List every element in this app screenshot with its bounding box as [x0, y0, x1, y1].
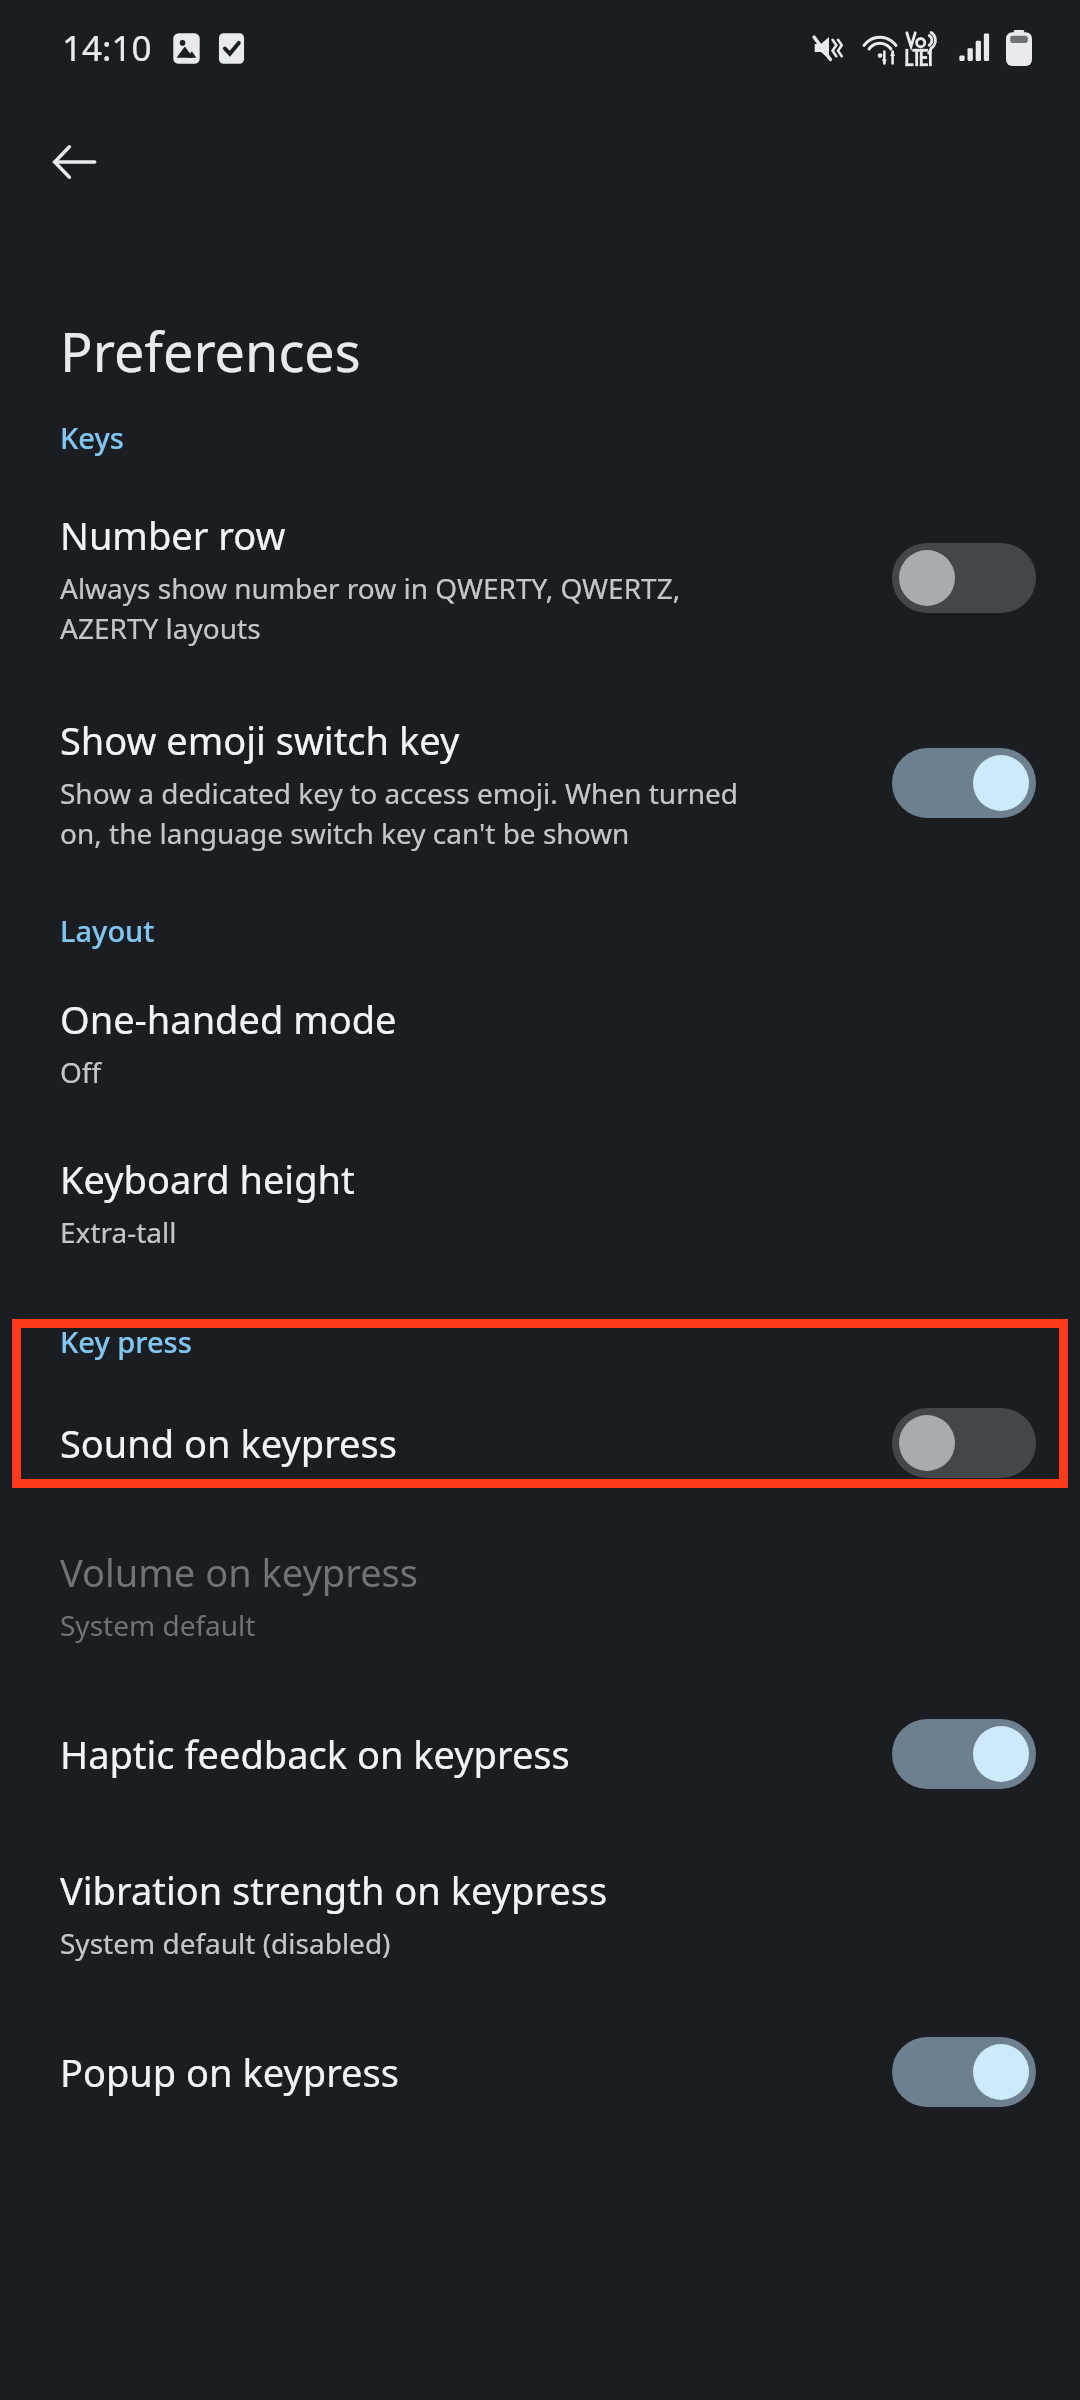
button[interactable]: Vibration strength on keypress — [0, 1829, 1080, 1997]
staticText: Layout — [60, 911, 155, 950]
staticText: Haptic feedback on keypress — [60, 1728, 570, 1780]
button[interactable]: Number row — [0, 457, 1080, 677]
button[interactable]: Show emoji switch key — [0, 677, 1080, 889]
staticText: Volume on keypress — [60, 1546, 418, 1598]
button[interactable] — [892, 2037, 1036, 2107]
staticText: Key press — [60, 1322, 192, 1361]
button[interactable] — [892, 748, 1036, 818]
button[interactable]: Back — [30, 118, 118, 206]
button[interactable] — [892, 1719, 1036, 1789]
staticText: Sound on keypress — [60, 1417, 397, 1469]
staticText: Number row — [60, 509, 286, 561]
staticText: 14:10 — [62, 24, 152, 72]
button[interactable]: Sound on keypress — [0, 1361, 1080, 1511]
staticText: Vibration strength on keypress — [60, 1864, 608, 1916]
staticText: Extra-tall — [60, 1213, 177, 1251]
staticText: Preferences — [60, 314, 361, 388]
button[interactable]: One-handed mode — [0, 950, 1080, 1118]
button[interactable]: Volume on keypress — [0, 1511, 1080, 1679]
button[interactable]: Keyboard height — [0, 1118, 1080, 1286]
staticText: Show a dedicated key to access emoji. Wh… — [60, 774, 739, 853]
staticText: System default (disabled) — [60, 1924, 391, 1962]
button[interactable]: Popup on keypress — [0, 1997, 1080, 2147]
staticText: Always show number row in QWERTY, QWERTZ… — [60, 569, 681, 648]
staticText: Keys — [60, 418, 124, 457]
staticText: Off — [60, 1053, 102, 1091]
button[interactable] — [892, 1408, 1036, 1478]
staticText: System default — [60, 1606, 256, 1644]
button[interactable] — [892, 543, 1036, 613]
staticText: Keyboard height — [60, 1153, 355, 1205]
staticText: Popup on keypress — [60, 2046, 399, 2098]
staticText: One-handed mode — [60, 993, 397, 1045]
button[interactable]: Haptic feedback on keypress — [0, 1679, 1080, 1829]
staticText: Show emoji switch key — [60, 714, 460, 766]
